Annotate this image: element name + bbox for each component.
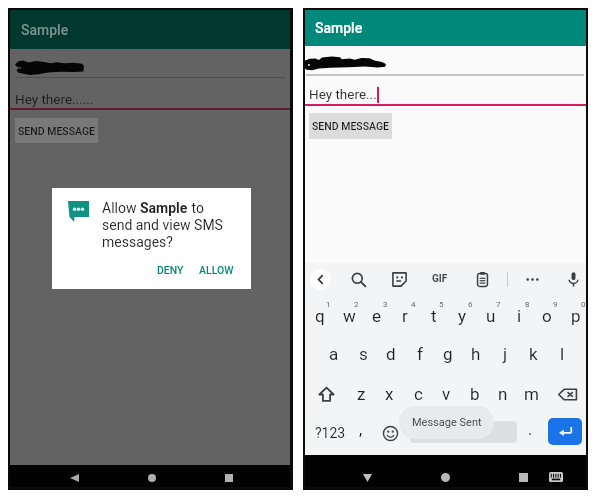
button[interactable]: p <box>562 298 590 334</box>
button[interactable]: GIF <box>428 267 451 291</box>
button[interactable]: Comma <box>349 419 373 447</box>
button[interactable]: n <box>489 376 517 412</box>
button[interactable]: Stickers <box>387 267 411 291</box>
button[interactable]: Back <box>63 465 85 487</box>
staticText: Message Sent <box>412 416 482 429</box>
button[interactable]: Enter <box>548 418 582 445</box>
staticText: SEND MESSAGE <box>18 125 95 137</box>
staticText: 7 <box>496 300 501 309</box>
staticText: Allow <box>102 200 140 216</box>
staticText: n <box>498 384 508 404</box>
button[interactable]: Sample <box>10 10 290 49</box>
staticText: z <box>357 384 366 404</box>
button[interactable]: SEND MESSAGE <box>15 118 98 143</box>
staticText: DENY <box>157 264 184 276</box>
staticText: Sample <box>140 200 188 216</box>
button[interactable]: k <box>519 336 547 372</box>
staticText: . <box>528 420 533 439</box>
staticText: ALLOW <box>199 264 234 276</box>
staticText: o <box>542 306 552 326</box>
button[interactable]: x <box>375 376 403 412</box>
button[interactable]: Voice input <box>561 267 585 291</box>
button[interactable]: More options <box>520 267 544 291</box>
button[interactable]: h <box>462 336 490 372</box>
staticText: t <box>431 306 437 326</box>
button[interactable]: Recents <box>512 455 534 487</box>
staticText: 3 <box>383 300 388 309</box>
staticText: 0 <box>581 300 586 309</box>
button[interactable]: r <box>391 298 419 334</box>
button[interactable]: d <box>377 336 405 372</box>
staticText: j <box>503 344 508 364</box>
staticText: b <box>470 384 480 404</box>
button[interactable]: ALLOW <box>193 259 240 281</box>
button[interactable]: Period <box>518 419 542 447</box>
button[interactable]: t <box>420 298 448 334</box>
staticText: SEND MESSAGE <box>312 120 389 132</box>
staticText: v <box>442 384 451 404</box>
button[interactable]: c <box>404 376 432 412</box>
button[interactable]: Sample <box>305 10 586 46</box>
button[interactable]: b <box>461 376 489 412</box>
staticText: e <box>372 306 382 326</box>
button[interactable]: s <box>349 336 377 372</box>
staticText: 2 <box>354 300 359 309</box>
staticText: l <box>560 344 565 364</box>
staticText: p <box>571 306 581 326</box>
button[interactable]: u <box>477 298 505 334</box>
button[interactable]: Shift <box>313 381 339 407</box>
staticText: d <box>386 344 396 364</box>
button[interactable]: DENY <box>151 259 190 281</box>
staticText: w <box>343 306 356 326</box>
button[interactable]: Back <box>310 269 331 290</box>
button[interactable]: Search <box>346 267 370 291</box>
staticText: a <box>329 344 339 364</box>
staticText: i <box>517 306 522 326</box>
staticText: 9 <box>553 300 558 309</box>
staticText: Sample <box>315 20 363 36</box>
button[interactable]: Hide keyboard <box>356 455 378 487</box>
staticText: Sample <box>21 22 69 38</box>
button[interactable]: Home <box>141 465 163 487</box>
staticText: 4 <box>411 300 416 309</box>
button[interactable]: y <box>448 298 476 334</box>
button[interactable]: z <box>347 376 375 412</box>
staticText: h <box>471 344 481 364</box>
button[interactable]: j <box>491 336 519 372</box>
button[interactable]: q <box>306 298 334 334</box>
button[interactable]: v <box>432 376 460 412</box>
button[interactable]: w <box>335 298 363 334</box>
staticText: r <box>402 306 408 326</box>
button[interactable]: m <box>517 376 545 412</box>
button[interactable]: Backspace <box>554 381 580 407</box>
staticText: messages? <box>102 234 173 250</box>
staticText: g <box>443 344 453 364</box>
staticText: 8 <box>525 300 530 309</box>
button[interactable]: Space <box>410 421 517 443</box>
staticText: to <box>188 200 204 216</box>
staticText: 5 <box>439 300 444 309</box>
button[interactable]: o <box>533 298 561 334</box>
staticText: y <box>458 306 467 326</box>
staticText: f <box>417 344 423 364</box>
button[interactable]: e <box>363 298 391 334</box>
staticText: x <box>385 384 394 404</box>
staticText: Hey there.... <box>309 86 381 102</box>
staticText: m <box>524 384 539 404</box>
button[interactable]: SEND MESSAGE <box>309 113 392 139</box>
button[interactable]: f <box>406 336 434 372</box>
button[interactable]: ?123 <box>314 419 346 447</box>
button[interactable]: a <box>320 336 348 372</box>
button[interactable]: i <box>505 298 533 334</box>
button[interactable]: Clipboard <box>470 267 494 291</box>
button[interactable]: l <box>548 336 576 372</box>
button[interactable]: Switch keyboard <box>545 455 567 487</box>
button[interactable]: g <box>434 336 462 372</box>
button[interactable]: Emoji <box>376 419 404 447</box>
staticText: , <box>359 420 363 439</box>
staticText: s <box>359 344 368 364</box>
button[interactable]: Recents <box>218 465 240 487</box>
staticText: ?123 <box>315 425 346 441</box>
staticText: q <box>315 306 325 326</box>
button[interactable]: Home <box>434 455 456 487</box>
